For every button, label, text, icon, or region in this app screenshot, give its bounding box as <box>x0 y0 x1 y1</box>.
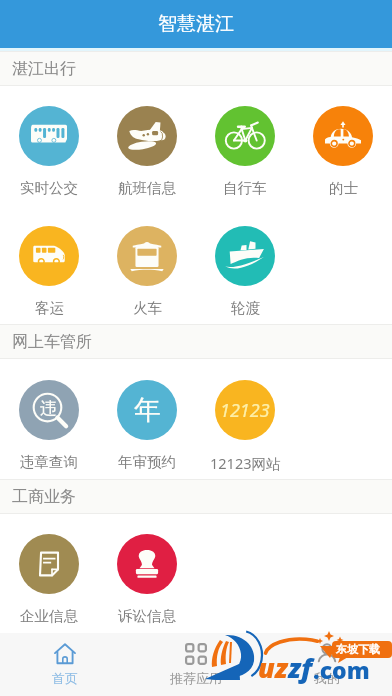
staticText: 12123 <box>220 398 270 423</box>
staticText: 12123网站 <box>210 453 281 473</box>
button[interactable]: 企业信息 <box>0 534 98 625</box>
staticText: .com <box>313 654 370 685</box>
button[interactable]: 12123 <box>196 380 294 473</box>
button[interactable]: Recommended apps <box>130 633 261 696</box>
staticText: 推荐应用 <box>170 670 222 686</box>
button[interactable]: 的士 <box>294 106 392 197</box>
staticText: zf <box>288 649 313 686</box>
staticText: 轮渡 <box>231 299 260 317</box>
staticText: 航班信息 <box>118 179 176 197</box>
staticText: 年 <box>134 393 161 427</box>
staticText: 自行车 <box>223 179 267 197</box>
staticText: 我的 <box>314 670 340 686</box>
button[interactable]: 年 <box>98 380 196 471</box>
button[interactable]: 客运 <box>0 226 98 317</box>
staticText: 客运 <box>35 299 64 317</box>
button[interactable]: 火车 <box>98 226 196 317</box>
button[interactable]: 自行车 <box>196 106 294 197</box>
button[interactable]: 实时公交 <box>0 106 98 197</box>
staticText: 东坡下载 <box>336 642 380 656</box>
staticText: uz <box>258 649 288 686</box>
staticText: 智慧湛江 <box>158 12 234 36</box>
staticText: 诉讼信息 <box>118 607 176 625</box>
staticText: 企业信息 <box>20 607 78 625</box>
staticText: 的士 <box>329 179 358 197</box>
button[interactable]: Mine <box>261 633 392 696</box>
staticText: 火车 <box>133 299 162 317</box>
button[interactable]: 轮渡 <box>196 226 294 317</box>
button[interactable]: 诉讼信息 <box>98 534 196 625</box>
staticText: 首页 <box>52 670 78 686</box>
button[interactable]: 违 <box>0 380 98 471</box>
staticText: 工商业务 <box>12 487 76 507</box>
button[interactable]: 航班信息 <box>98 106 196 197</box>
staticText: 年审预约 <box>118 453 176 471</box>
staticText: 实时公交 <box>20 179 78 197</box>
staticText: 违 <box>40 398 57 419</box>
button[interactable]: Home <box>0 633 130 696</box>
staticText: 违章查询 <box>20 453 78 471</box>
staticText: 网上车管所 <box>12 332 92 352</box>
staticText: 湛江出行 <box>12 59 76 79</box>
